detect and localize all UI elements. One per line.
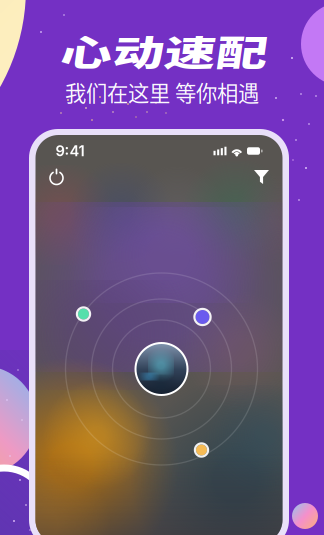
staticText: 9:41 [55, 142, 84, 160]
button[interactable]: Filter [250, 166, 272, 188]
staticText: 心动速配 [92, 26, 232, 76]
staticText: 我们在这里 等你相遇 [65, 77, 259, 107]
button[interactable]: Power [45, 166, 67, 188]
